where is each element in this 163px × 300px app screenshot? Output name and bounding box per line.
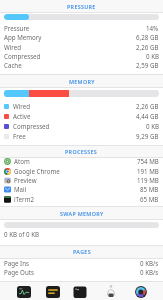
staticText: 191 MB bbox=[137, 167, 159, 175]
staticText: 119 MB bbox=[137, 176, 159, 184]
staticText: 65 MB bbox=[140, 195, 159, 203]
staticText: Page Outs bbox=[4, 268, 34, 276]
staticText: 0 KB/s bbox=[140, 268, 159, 276]
staticText: Preview bbox=[14, 176, 37, 184]
button[interactable] bbox=[45, 284, 60, 299]
staticText: Wired bbox=[4, 43, 22, 51]
button[interactable]: Page Ins bbox=[4, 258, 159, 267]
button[interactable]: Compressed bbox=[4, 51, 159, 60]
staticText: PROCESSES bbox=[65, 148, 98, 155]
staticText: 0 KB of 0 KB bbox=[4, 230, 40, 238]
button[interactable]: Active bbox=[4, 111, 159, 120]
button[interactable]: Compressed bbox=[4, 121, 159, 130]
staticText: Free bbox=[13, 132, 26, 140]
button[interactable]: Page Outs bbox=[4, 267, 159, 276]
staticText: 2,59 GB bbox=[136, 61, 159, 69]
staticText: Page Ins bbox=[4, 259, 30, 267]
staticText: MEMORY bbox=[69, 78, 95, 85]
staticText: 2,26 GB bbox=[136, 43, 159, 51]
staticText: SWAP MEMORY bbox=[60, 210, 104, 217]
staticText: Atom bbox=[14, 157, 30, 165]
staticText: 2,26 GB bbox=[136, 102, 159, 110]
staticText: iTerm2 bbox=[14, 195, 34, 203]
staticText: PRESSURE bbox=[67, 3, 96, 10]
button[interactable]: Mail bbox=[4, 184, 159, 193]
staticText: Compressed bbox=[13, 122, 50, 130]
staticText: Wired bbox=[13, 102, 31, 110]
staticText: 754 MB bbox=[137, 157, 159, 165]
button[interactable] bbox=[103, 284, 118, 299]
staticText: Compressed bbox=[4, 52, 41, 60]
button[interactable]: Google Chrome bbox=[4, 166, 159, 175]
button[interactable]: Wired bbox=[4, 101, 159, 110]
staticText: 9,29 GB bbox=[136, 132, 159, 140]
staticText: Mail bbox=[14, 185, 27, 193]
staticText: Pressure bbox=[4, 24, 30, 32]
button[interactable]: iTerm2 bbox=[4, 194, 159, 203]
button[interactable] bbox=[16, 284, 31, 299]
staticText: PAGES bbox=[73, 248, 91, 255]
staticText: Cache bbox=[4, 61, 22, 69]
button[interactable] bbox=[133, 284, 148, 299]
staticText: Active bbox=[13, 112, 31, 120]
button[interactable]: App Memory bbox=[4, 32, 159, 41]
button[interactable]: Cache bbox=[4, 60, 159, 69]
button[interactable]: Preview bbox=[4, 175, 159, 184]
staticText: 0 KB bbox=[146, 52, 159, 60]
button[interactable] bbox=[72, 284, 87, 299]
button[interactable]: Wired bbox=[4, 42, 159, 51]
staticText: Google Chrome bbox=[14, 167, 60, 175]
button[interactable]: Free bbox=[4, 131, 159, 140]
button[interactable]: Pressure bbox=[4, 23, 159, 32]
button[interactable]: Atom bbox=[4, 156, 159, 165]
staticText: 14% bbox=[146, 24, 159, 32]
staticText: 85 MB bbox=[140, 185, 159, 193]
staticText: 4,44 GB bbox=[136, 112, 159, 120]
staticText: 6,28 GB bbox=[136, 33, 159, 41]
staticText: 0 KB bbox=[146, 122, 159, 130]
staticText: App Memory bbox=[4, 33, 42, 41]
staticText: 0 KB/s bbox=[140, 259, 159, 267]
